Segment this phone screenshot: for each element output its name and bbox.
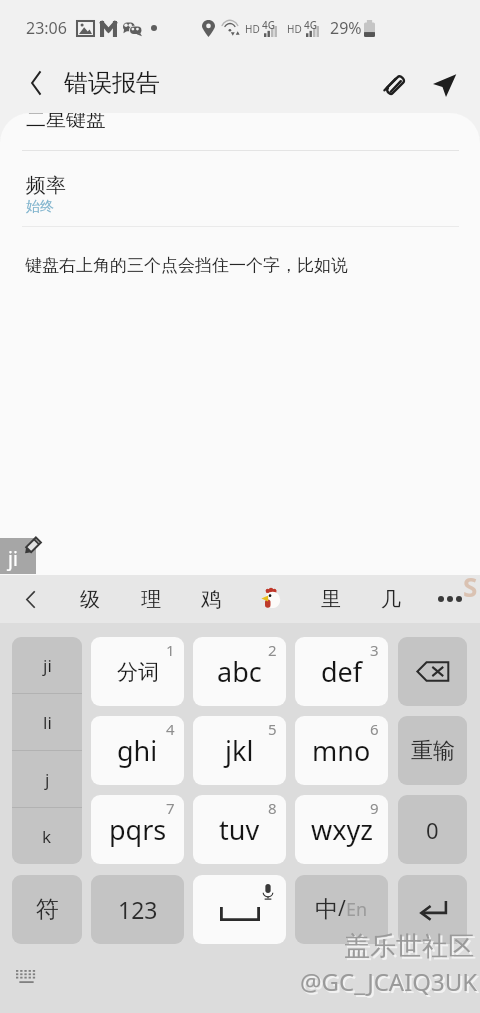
staticText: mno bbox=[312, 732, 371, 769]
staticText: En bbox=[346, 897, 368, 922]
staticText: S bbox=[463, 569, 478, 604]
staticText: HD bbox=[245, 22, 260, 36]
button[interactable]: Send bbox=[422, 63, 466, 107]
staticText: 几 bbox=[381, 587, 401, 612]
staticText: 里 bbox=[321, 587, 341, 612]
staticText: pqrs bbox=[109, 811, 167, 848]
staticText: 5 bbox=[268, 719, 277, 739]
button[interactable]: ghi bbox=[91, 716, 184, 785]
staticText: tuv bbox=[219, 811, 260, 848]
staticText: HD bbox=[287, 22, 302, 36]
staticText: 1 bbox=[166, 640, 175, 660]
staticText: 2 bbox=[268, 640, 277, 660]
button[interactable]: jkl bbox=[193, 716, 286, 785]
staticText: 23:06 bbox=[26, 17, 67, 39]
staticText: 错误报告 bbox=[64, 68, 160, 98]
staticText: 二星键盘 bbox=[26, 113, 106, 132]
staticText: k bbox=[42, 825, 52, 848]
button[interactable]: ji bbox=[0, 538, 36, 574]
staticText: 分词 bbox=[117, 659, 159, 685]
staticText: @GC_JCAIQ3UK bbox=[300, 965, 478, 998]
staticText: ji bbox=[43, 654, 52, 677]
staticText: abc bbox=[217, 653, 262, 690]
button[interactable]: 中 bbox=[295, 875, 388, 944]
button[interactable]: 里 bbox=[314, 575, 348, 623]
button[interactable]: 理 bbox=[134, 575, 168, 623]
staticText: def bbox=[321, 653, 363, 690]
button[interactable]: j bbox=[12, 751, 82, 807]
button[interactable]: li bbox=[12, 694, 82, 750]
button[interactable]: Chicken emoji bbox=[254, 575, 288, 623]
staticText: 级 bbox=[80, 587, 100, 612]
button[interactable]: pqrs bbox=[91, 795, 184, 864]
staticText: 123 bbox=[118, 894, 158, 925]
staticText: 键盘右上角的三个点会挡住一个字，比如说 bbox=[25, 255, 348, 276]
button[interactable]: Space bbox=[193, 875, 286, 944]
staticText: 8 bbox=[268, 798, 277, 818]
staticText: ghi bbox=[117, 732, 158, 769]
button[interactable]: 鸡 bbox=[194, 575, 228, 623]
staticText: 盖乐世社区 bbox=[346, 932, 476, 965]
staticText: 3 bbox=[370, 640, 379, 660]
staticText: j bbox=[45, 768, 50, 791]
staticText: 9 bbox=[370, 798, 379, 818]
button[interactable]: Previous page bbox=[12, 581, 48, 617]
button[interactable]: def bbox=[295, 637, 388, 706]
other: Edit bbox=[24, 536, 42, 554]
staticText: 0 bbox=[426, 815, 439, 845]
button[interactable]: abc bbox=[193, 637, 286, 706]
button[interactable]: 分词 bbox=[91, 637, 184, 706]
staticText: 符 bbox=[36, 895, 59, 924]
staticText: wxyz bbox=[311, 811, 373, 848]
staticText: 6 bbox=[370, 719, 379, 739]
staticText: 4 bbox=[166, 719, 175, 739]
staticText: 重输 bbox=[411, 737, 455, 765]
button[interactable]: Switch keyboard bbox=[13, 966, 40, 988]
staticText: li bbox=[43, 711, 52, 734]
staticText: 始终 bbox=[26, 198, 54, 216]
staticText: 鸡 bbox=[201, 587, 221, 612]
staticText: / bbox=[338, 894, 346, 923]
button[interactable]: 0 bbox=[398, 795, 467, 864]
button[interactable]: k bbox=[12, 808, 82, 864]
button[interactable]: Back bbox=[18, 67, 54, 103]
staticText: 频率 bbox=[26, 173, 66, 198]
button[interactable]: ji bbox=[12, 637, 82, 693]
button[interactable]: 符 bbox=[12, 875, 82, 944]
staticText: 29% bbox=[330, 17, 362, 39]
staticText: 4G bbox=[304, 18, 317, 32]
staticText: 理 bbox=[141, 587, 161, 612]
staticText: ji bbox=[8, 546, 18, 572]
button[interactable]: wxyz bbox=[295, 795, 388, 864]
button[interactable]: tuv bbox=[193, 795, 286, 864]
button[interactable]: 123 bbox=[91, 875, 184, 944]
button[interactable]: 级 bbox=[73, 575, 107, 623]
button[interactable]: Delete bbox=[398, 637, 467, 706]
staticText: 4G bbox=[262, 18, 275, 32]
button[interactable]: mno bbox=[295, 716, 388, 785]
staticText: jkl bbox=[225, 732, 254, 769]
staticText: 7 bbox=[166, 798, 175, 818]
staticText: 盖乐世社区 bbox=[344, 930, 474, 963]
button[interactable]: Enter bbox=[398, 875, 467, 944]
staticText: @GC_JCAIQ3UK bbox=[302, 967, 480, 1000]
button[interactable]: Attach bbox=[374, 63, 418, 107]
button[interactable]: 重输 bbox=[398, 716, 467, 785]
staticText: 中 bbox=[315, 895, 338, 924]
button[interactable]: 几 bbox=[374, 575, 408, 623]
button[interactable]: More candidates bbox=[432, 581, 468, 617]
